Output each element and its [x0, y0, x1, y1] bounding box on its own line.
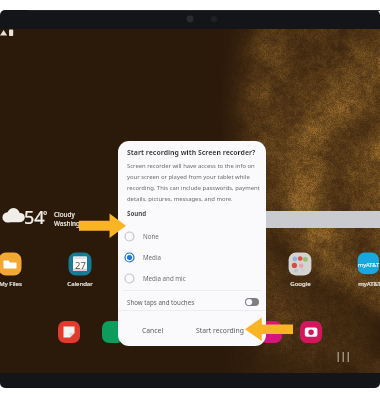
button[interactable]: Recent apps [336, 349, 354, 363]
button[interactable]: myAT&T [345, 252, 380, 288]
staticText: Start recording with Screen recorder? [127, 148, 256, 157]
button[interactable]: Notes [58, 321, 80, 343]
staticText: Media and mic [143, 274, 186, 282]
button[interactable]: Camera [300, 321, 322, 343]
staticText: Cloudy [54, 210, 75, 219]
staticText: 54 [24, 205, 45, 230]
button[interactable]: Show taps and touches [118, 291, 266, 312]
staticText: Cancel [142, 326, 164, 335]
staticText: Washington [54, 219, 91, 228]
staticText: 27 [75, 259, 86, 272]
staticText: details, pictures, messages, and more. [127, 195, 233, 203]
staticText: myAT&T [358, 261, 380, 269]
staticText: Media [143, 253, 161, 261]
staticText: My Files [0, 280, 22, 288]
staticText: Start recording [196, 326, 244, 335]
staticText: your screen or played from your tablet w… [127, 173, 250, 181]
button[interactable]: Media and mic [118, 268, 266, 288]
button[interactable]: Media [118, 247, 266, 267]
button[interactable]: My Files [0, 252, 34, 288]
staticText: Show taps and touches [127, 298, 195, 306]
staticText: Google [290, 280, 311, 288]
button[interactable]: 27 [56, 252, 104, 288]
staticText: None [143, 232, 159, 240]
staticText: recording. This can include passwords, p… [127, 184, 260, 192]
button[interactable]: None [118, 226, 266, 246]
staticText: Calendar [67, 280, 93, 288]
button[interactable] [2, 205, 26, 227]
button[interactable]: Google [276, 252, 324, 288]
button[interactable]: Gallery [260, 321, 282, 343]
button[interactable]: Start recording [180, 316, 260, 345]
staticText: myAT&T [358, 280, 380, 288]
staticText: ° [43, 208, 48, 222]
button[interactable]: Phone [102, 321, 124, 343]
staticText: Sound [127, 209, 147, 217]
staticText: Screen recorder will have access to the … [127, 162, 255, 170]
button[interactable]: Cancel [126, 316, 180, 345]
